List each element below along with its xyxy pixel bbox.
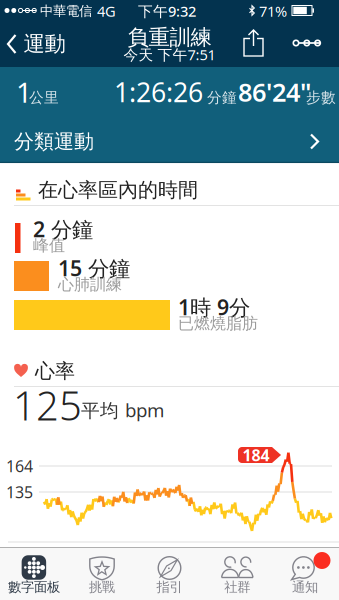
staticText: 下午9:32	[138, 1, 196, 21]
staticText: 分鐘	[207, 88, 237, 106]
staticText: 164	[6, 455, 33, 477]
staticText: 1	[16, 73, 32, 111]
staticText: 2 分鐘	[33, 215, 93, 243]
staticText: 125	[13, 378, 82, 431]
staticText: 15 分鐘	[58, 254, 130, 282]
button[interactable]: 分類運動	[0, 120, 339, 163]
staticText: 運動	[23, 31, 65, 57]
staticText: 86'24"	[238, 75, 311, 109]
button[interactable]	[242, 28, 265, 58]
staticText: 負重訓練	[127, 24, 211, 51]
staticText: 峰值	[33, 236, 65, 255]
staticText: 中華電信	[40, 3, 92, 19]
button[interactable]: 運動	[7, 22, 65, 66]
staticText: 71%	[259, 1, 287, 21]
staticText: 今天 下午7:51	[123, 45, 215, 64]
staticText: 4G	[97, 1, 116, 21]
staticText: 分類運動	[14, 129, 94, 154]
staticText: 184	[242, 444, 269, 466]
staticText: 指引	[156, 579, 182, 595]
staticText: 135	[6, 481, 33, 503]
button[interactable]: 挑戰	[68, 548, 136, 600]
staticText: 1時 9分	[178, 293, 250, 321]
staticText: 挑戰	[89, 579, 115, 595]
button[interactable]: 數字面板	[0, 548, 68, 600]
staticText: 心率	[35, 359, 75, 383]
staticText: 在心率區內的時間	[38, 178, 198, 202]
staticText: 公里	[29, 88, 59, 106]
staticText: 1:26:26	[114, 74, 203, 110]
staticText: 步數	[306, 88, 336, 106]
staticText: 數字面板	[8, 579, 60, 595]
button[interactable]: 社群	[203, 548, 271, 600]
staticText: 心肺訓練	[58, 275, 122, 294]
staticText: 通知	[292, 579, 318, 595]
button[interactable]: 通知	[271, 548, 339, 600]
staticText: 已燃燒脂肪	[178, 314, 258, 333]
button[interactable]	[291, 28, 323, 58]
button[interactable]: 指引	[136, 548, 203, 600]
staticText: 社群	[224, 579, 250, 595]
staticText: 平均 bpm	[81, 398, 164, 422]
